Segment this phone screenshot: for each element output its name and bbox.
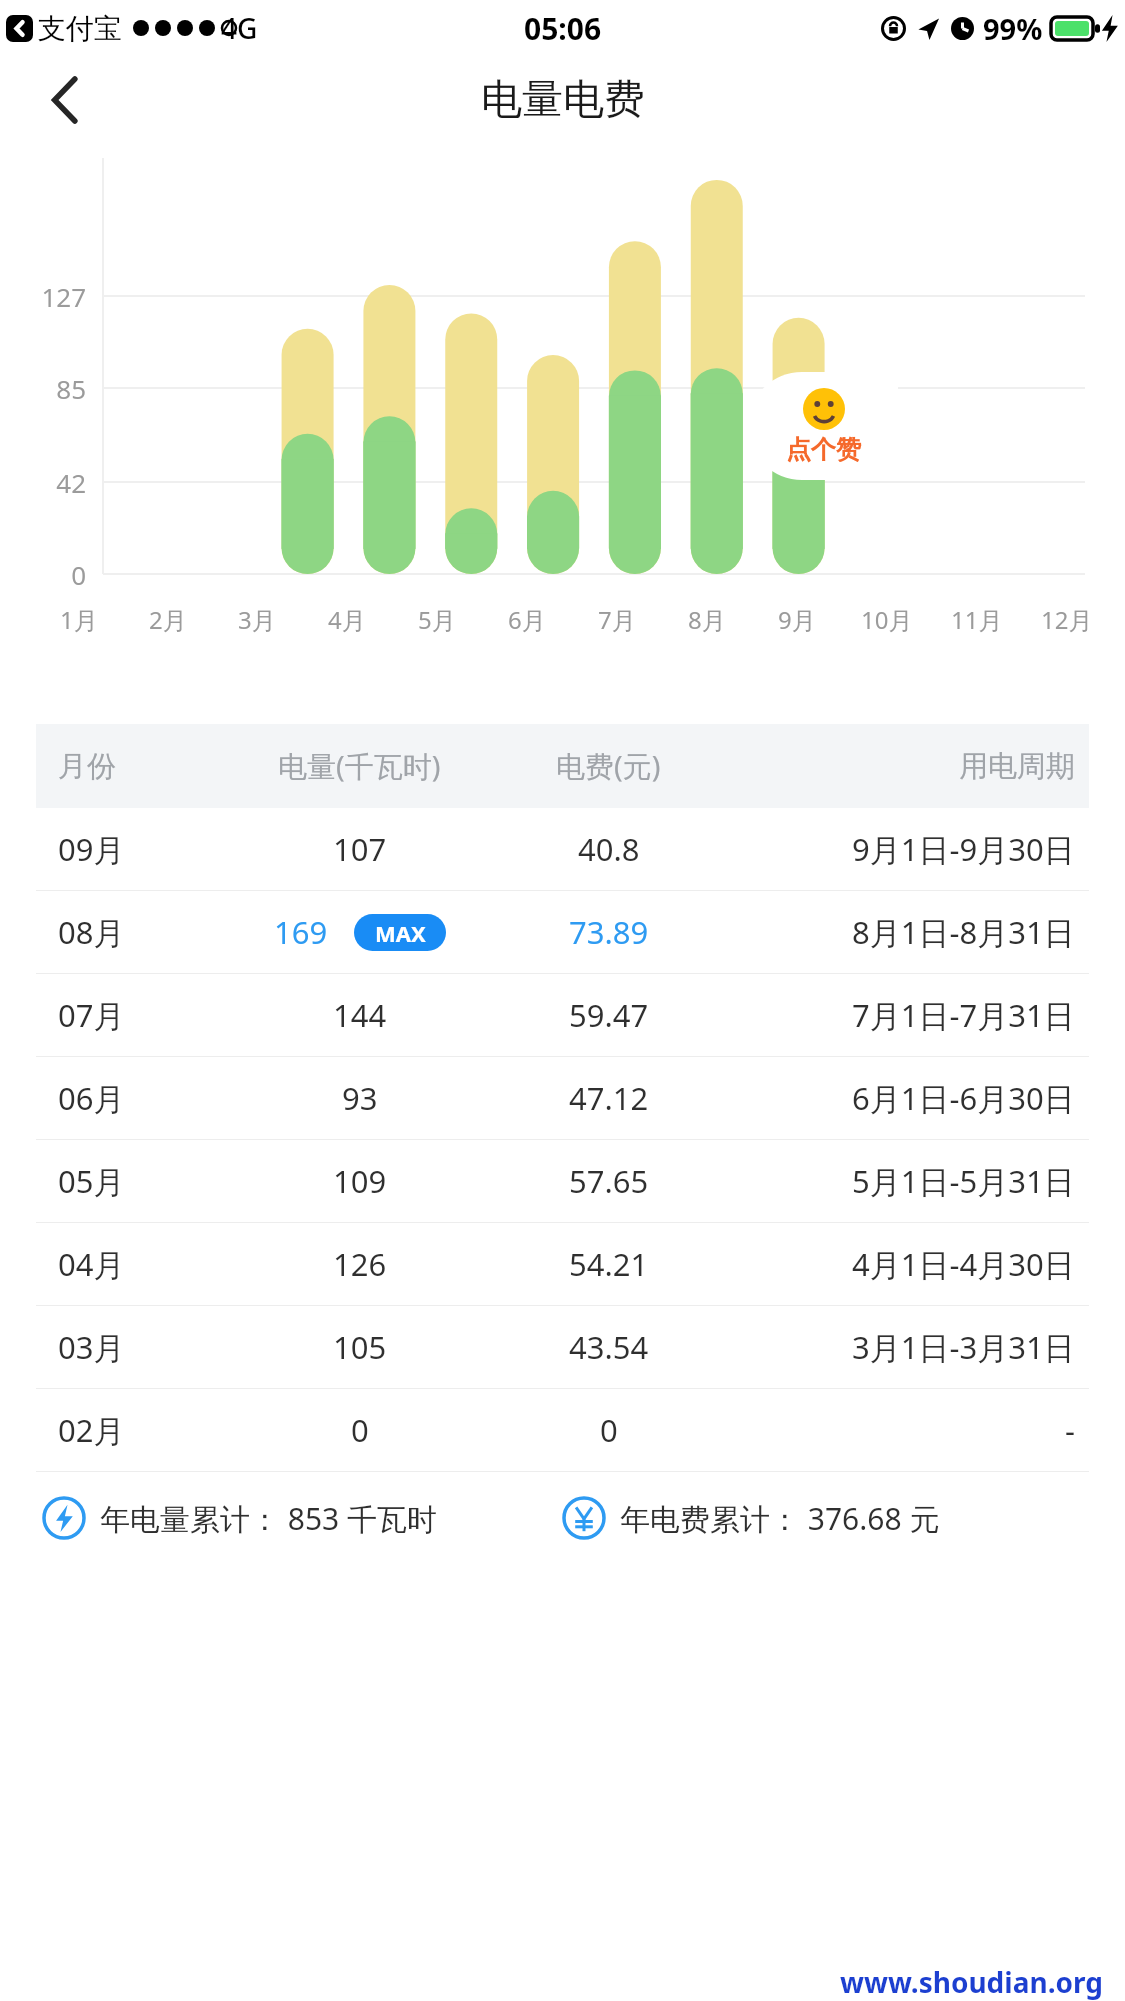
staticText: 42 xyxy=(18,465,86,500)
staticText: 月份 xyxy=(58,748,116,785)
staticText: 105 xyxy=(333,1326,387,1368)
button[interactable]: 06月 xyxy=(36,1057,1089,1139)
staticText: 43.54 xyxy=(569,1326,649,1368)
button[interactable]: 04月 xyxy=(36,1223,1089,1305)
staticText: 09月 xyxy=(58,828,125,870)
staticText: 06月 xyxy=(58,1077,125,1119)
button[interactable]: 03月 xyxy=(36,1306,1089,1388)
staticText: 03月 xyxy=(58,1326,125,1368)
staticText: 02月 xyxy=(58,1409,125,1451)
button[interactable]: Back to Alipay xyxy=(6,15,33,42)
button[interactable]: 05月 xyxy=(36,1140,1089,1222)
staticText: 99% xyxy=(983,9,1043,48)
staticText: 40.8 xyxy=(578,828,640,870)
staticText: 7月 xyxy=(598,603,636,636)
staticText: 12月 xyxy=(1041,603,1093,636)
staticText: 4G xyxy=(221,9,258,47)
staticText: 126 xyxy=(333,1243,387,1285)
staticText: 0 xyxy=(18,557,86,592)
staticText: 109 xyxy=(333,1160,387,1202)
staticText: 5月 xyxy=(418,603,456,636)
staticText: 年电费累计： 376.68 元 xyxy=(620,1498,940,1539)
staticText: 点个赞 xyxy=(786,434,861,465)
staticText: 73.89 xyxy=(569,911,649,953)
staticText: 11月 xyxy=(951,603,1003,636)
staticText: www.shoudian.org xyxy=(840,1963,1103,2001)
staticText: 8月 xyxy=(688,603,726,636)
staticText: 08月 xyxy=(58,911,125,953)
button[interactable]: 07月 xyxy=(36,974,1089,1056)
staticText: 57.65 xyxy=(569,1160,649,1202)
staticText: 9月1日-9月30日 xyxy=(852,828,1075,870)
staticText: 04月 xyxy=(58,1243,125,1285)
staticText: 支付宝 xyxy=(38,11,122,46)
staticText: 6月 xyxy=(508,603,546,636)
staticText: 7月1日-7月31日 xyxy=(852,994,1075,1036)
staticText: 用电周期 xyxy=(959,748,1075,785)
staticText: 169 xyxy=(274,911,328,953)
staticText: 107 xyxy=(333,828,387,870)
button[interactable]: 08月 xyxy=(36,891,1089,973)
staticText: 54.21 xyxy=(569,1243,649,1285)
staticText: 6月1日-6月30日 xyxy=(852,1077,1075,1119)
staticText: 05:06 xyxy=(524,8,602,49)
staticText: MAX xyxy=(375,918,426,948)
staticText: - xyxy=(1065,1409,1075,1451)
staticText: 电量(千瓦时) xyxy=(278,746,441,786)
staticText: 2月 xyxy=(149,603,187,636)
staticText: 8月1日-8月31日 xyxy=(852,911,1075,953)
staticText: 10月 xyxy=(861,603,913,636)
staticText: 4月1日-4月30日 xyxy=(852,1243,1075,1285)
staticText: 85 xyxy=(18,371,86,406)
staticText: 127 xyxy=(18,279,86,314)
staticText: 3月 xyxy=(238,603,276,636)
staticText: 0 xyxy=(600,1409,618,1451)
staticText: 0 xyxy=(351,1409,369,1451)
staticText: 144 xyxy=(333,994,387,1036)
button[interactable]: 09月 xyxy=(36,808,1089,890)
staticText: 电费(元) xyxy=(556,746,661,786)
staticText: 05月 xyxy=(58,1160,125,1202)
button[interactable]: 点个赞 xyxy=(748,372,898,480)
staticText: 5月1日-5月31日 xyxy=(852,1160,1075,1202)
staticText: 47.12 xyxy=(569,1077,649,1119)
button[interactable]: Back xyxy=(34,69,96,131)
staticText: 59.47 xyxy=(569,994,649,1036)
staticText: 3月1日-3月31日 xyxy=(852,1326,1075,1368)
button[interactable]: 02月 xyxy=(36,1389,1089,1471)
staticText: 9月 xyxy=(778,603,816,636)
staticText: 4月 xyxy=(328,603,366,636)
staticText: 07月 xyxy=(58,994,125,1036)
staticText: 年电量累计： 853 千瓦时 xyxy=(100,1498,438,1539)
staticText: 93 xyxy=(342,1077,378,1119)
staticText: 电量电费 xyxy=(481,74,645,126)
staticText: 1月 xyxy=(60,603,98,636)
